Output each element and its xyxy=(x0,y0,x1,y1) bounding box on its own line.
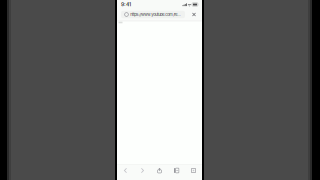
button[interactable]: Share xyxy=(155,166,164,175)
button[interactable]: https://www.youtube.com/redirect?... xyxy=(121,11,185,18)
button[interactable]: Back xyxy=(121,166,130,175)
button[interactable]: Tabs xyxy=(189,166,198,175)
button[interactable]: Bookmarks xyxy=(172,166,181,175)
button[interactable]: Forward xyxy=(138,166,147,175)
staticText: https://www.youtube.com/redirect?... xyxy=(130,12,182,17)
staticText: 9:41 xyxy=(121,1,131,7)
button[interactable]: Close xyxy=(189,9,199,19)
